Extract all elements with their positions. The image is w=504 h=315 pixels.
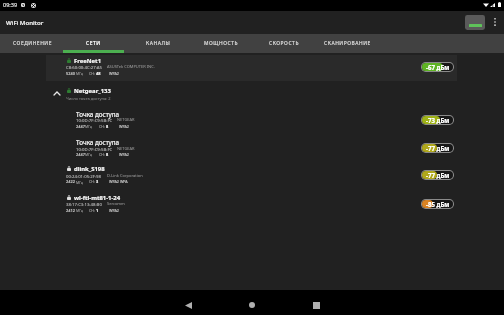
- staticText: dlink_S198: [74, 165, 105, 173]
- staticText: 8: [106, 152, 109, 157]
- staticText: СЕТИ: [86, 40, 101, 47]
- staticText: 2447: [76, 152, 85, 157]
- staticText: СКОРОСТЬ: [269, 40, 299, 47]
- button[interactable]: Signal level: [465, 15, 485, 30]
- staticText: D-Link Corporation: [107, 173, 143, 178]
- button[interactable]: МОЩНОСТЬ: [190, 34, 253, 53]
- button[interactable]: СОЕДИНЕНИЕ: [1, 34, 63, 53]
- staticText: CH:: [99, 152, 106, 157]
- button[interactable]: Recent apps: [304, 293, 328, 315]
- button[interactable]: -77 дБм: [421, 170, 454, 180]
- staticText: CH:: [89, 179, 96, 184]
- staticText: WiFi Monitor: [6, 18, 44, 26]
- staticText: 48: [96, 71, 101, 76]
- staticText: -67 дБм: [426, 63, 450, 71]
- staticText: КАНАЛЫ: [146, 40, 171, 47]
- staticText: МГц: [76, 208, 83, 213]
- button[interactable]: Home: [240, 293, 264, 315]
- button[interactable]: -85 дБм: [421, 199, 454, 209]
- staticText: 38:17:C3:13:48:B0: [66, 201, 102, 207]
- button[interactable]: Back: [176, 293, 200, 315]
- staticText: -85 дБм: [426, 200, 450, 208]
- staticText: 2412: [66, 208, 75, 213]
- staticText: 10:0D:7F:C9:5B:FC: [76, 146, 113, 152]
- staticText: МГц: [76, 71, 83, 76]
- staticText: СОЕДИНЕНИЕ: [13, 40, 52, 47]
- staticText: 8: [106, 124, 109, 129]
- button[interactable]: More options: [487, 10, 503, 33]
- button[interactable]: СКАНИРОВАНИЕ: [315, 34, 379, 53]
- staticText: Sercomm: [107, 201, 125, 206]
- staticText: Точка доступа: [76, 110, 120, 119]
- staticText: FreeNet1: [74, 57, 102, 65]
- staticText: 2422: [66, 179, 75, 184]
- staticText: wl-ftl-mt81-1-24: [74, 194, 121, 202]
- staticText: -73 дБм: [426, 116, 450, 124]
- staticText: CH:: [89, 71, 96, 76]
- staticText: 1: [96, 208, 99, 213]
- staticText: C8:60:00:4C:27:A5: [66, 64, 103, 70]
- button[interactable]: [46, 190, 457, 213]
- staticText: МОЩНОСТЬ: [204, 40, 239, 47]
- staticText: 10:0D:7F:C9:5B:FC: [76, 117, 113, 123]
- button[interactable]: -73 дБм: [421, 115, 454, 125]
- staticText: WPA2: [109, 208, 119, 213]
- staticText: NETGEAR: [117, 117, 135, 122]
- button[interactable]: СКОРОСТЬ: [253, 34, 315, 53]
- staticText: Netgear_133: [74, 87, 111, 95]
- button[interactable]: [46, 53, 457, 76]
- button[interactable]: -67 дБм: [421, 62, 454, 72]
- staticText: -77 дБм: [426, 171, 450, 179]
- staticText: МГц: [85, 124, 92, 129]
- staticText: CH:: [99, 124, 106, 129]
- button[interactable]: -77 дБм: [421, 143, 454, 153]
- button[interactable]: [46, 134, 457, 157]
- staticText: CH:: [89, 208, 96, 213]
- staticText: 3: [96, 179, 99, 184]
- staticText: 09:39: [3, 1, 18, 8]
- staticText: WPA2: [119, 124, 129, 129]
- staticText: 00:24:01:05:2F:98: [66, 173, 102, 179]
- staticText: -77 дБм: [426, 144, 450, 152]
- staticText: МГц: [85, 152, 92, 157]
- button[interactable]: КАНАЛЫ: [126, 34, 190, 53]
- staticText: ASUSTek COMPUTER INC.: [107, 64, 155, 69]
- staticText: МГц: [76, 180, 83, 185]
- staticText: WPA2: [109, 71, 119, 76]
- staticText: Число точек доступа: 2: [66, 96, 111, 101]
- button[interactable]: [46, 83, 457, 103]
- staticText: WPA2: [119, 152, 129, 157]
- staticText: 5240: [66, 71, 75, 76]
- button[interactable]: [46, 162, 457, 185]
- staticText: Точка доступа: [76, 138, 120, 147]
- staticText: WPA2 WPA: [109, 179, 128, 184]
- staticText: 2447: [76, 124, 85, 129]
- staticText: СКАНИРОВАНИЕ: [324, 40, 371, 47]
- staticText: NETGEAR: [117, 146, 135, 151]
- button[interactable]: СЕТИ: [63, 34, 124, 53]
- button[interactable]: [46, 106, 457, 129]
